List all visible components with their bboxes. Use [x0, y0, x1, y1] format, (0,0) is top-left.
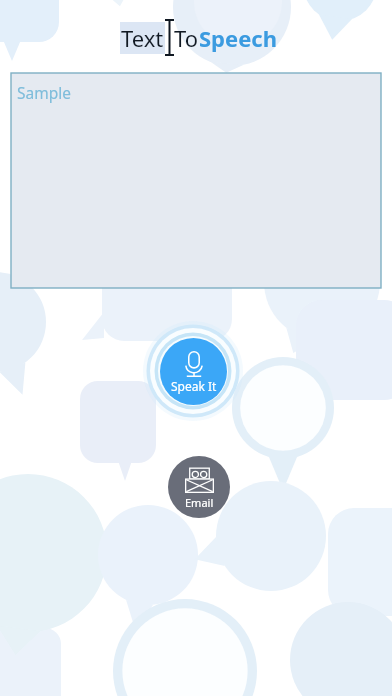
staticText: Speech [199, 23, 277, 53]
staticText: Speak It [171, 378, 217, 394]
button[interactable]: Email [168, 456, 230, 518]
staticText: Email [185, 495, 214, 510]
staticText: Sample [17, 82, 71, 103]
staticText: Text [121, 23, 164, 53]
button[interactable]: Speak It [160, 338, 227, 405]
staticText: To [174, 23, 199, 53]
